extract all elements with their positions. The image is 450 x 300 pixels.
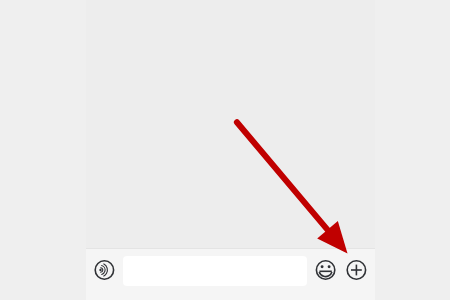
button[interactable]: Add attachment [343,257,369,283]
button[interactable]: Send voice message [91,257,117,283]
button[interactable]: Insert emoji [313,257,339,283]
